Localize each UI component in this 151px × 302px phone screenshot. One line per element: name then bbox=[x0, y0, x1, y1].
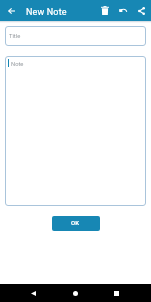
button[interactable]: Share bbox=[133, 0, 150, 21]
button[interactable]: Delete bbox=[96, 0, 113, 21]
button[interactable]: Note bbox=[5, 56, 146, 206]
staticText: New Note bbox=[26, 7, 67, 18]
button[interactable]: Home bbox=[64, 284, 87, 302]
button[interactable]: Back bbox=[22, 284, 45, 302]
button[interactable]: Undo bbox=[114, 0, 131, 21]
button[interactable]: OK bbox=[52, 216, 100, 231]
button[interactable]: Title bbox=[5, 26, 146, 46]
button[interactable]: Recent apps bbox=[105, 284, 128, 302]
staticText: Note bbox=[11, 61, 24, 68]
button[interactable]: Back bbox=[2, 0, 21, 21]
staticText: Title bbox=[9, 33, 21, 40]
staticText: OK bbox=[71, 219, 79, 226]
